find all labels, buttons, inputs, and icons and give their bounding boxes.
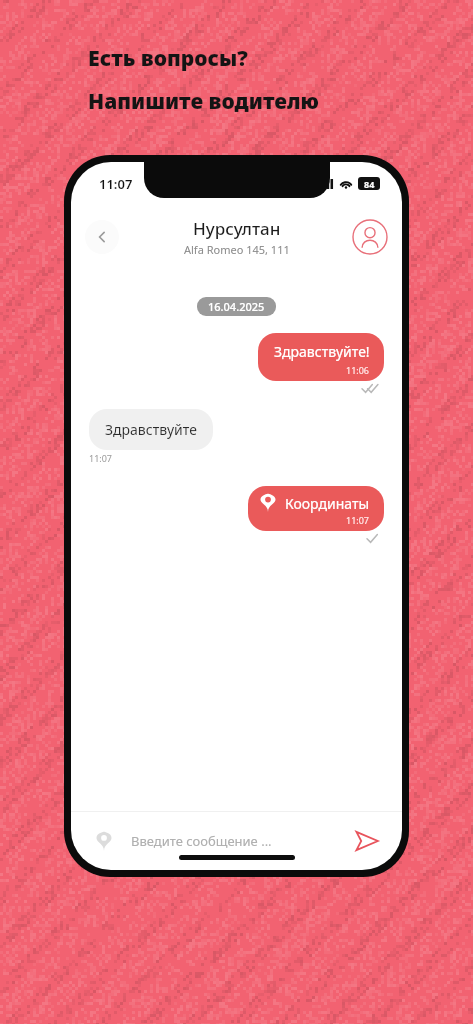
button[interactable]: Send <box>350 824 384 858</box>
staticText: Напишите водителю <box>88 87 319 116</box>
staticText: Здравствуйте! <box>274 342 370 361</box>
staticText: Введите сообщение ... <box>131 832 272 850</box>
staticText: 84 <box>364 178 375 190</box>
staticText: 16.04.2025 <box>208 299 265 314</box>
staticText: 11:07 <box>346 514 370 526</box>
staticText: Alfa Romeo 145, 111 <box>184 242 290 257</box>
button[interactable]: Координаты <box>248 486 384 531</box>
staticText: 11:06 <box>346 364 370 376</box>
button[interactable]: Здравствуйте! <box>258 333 384 381</box>
button[interactable]: Здравствуйте <box>89 409 213 450</box>
button[interactable]: Profile <box>352 219 388 255</box>
staticText: Нурсултан <box>193 217 281 240</box>
button[interactable]: Back <box>85 220 119 254</box>
staticText: 11:07 <box>89 452 113 464</box>
button[interactable]: Введите сообщение ... <box>131 832 350 850</box>
button[interactable]: Send location <box>89 826 119 856</box>
staticText: 11:07 <box>99 175 133 193</box>
staticText: Координаты <box>285 494 370 513</box>
staticText: Есть вопросы? <box>88 44 248 73</box>
staticText: Здравствуйте <box>105 420 197 439</box>
